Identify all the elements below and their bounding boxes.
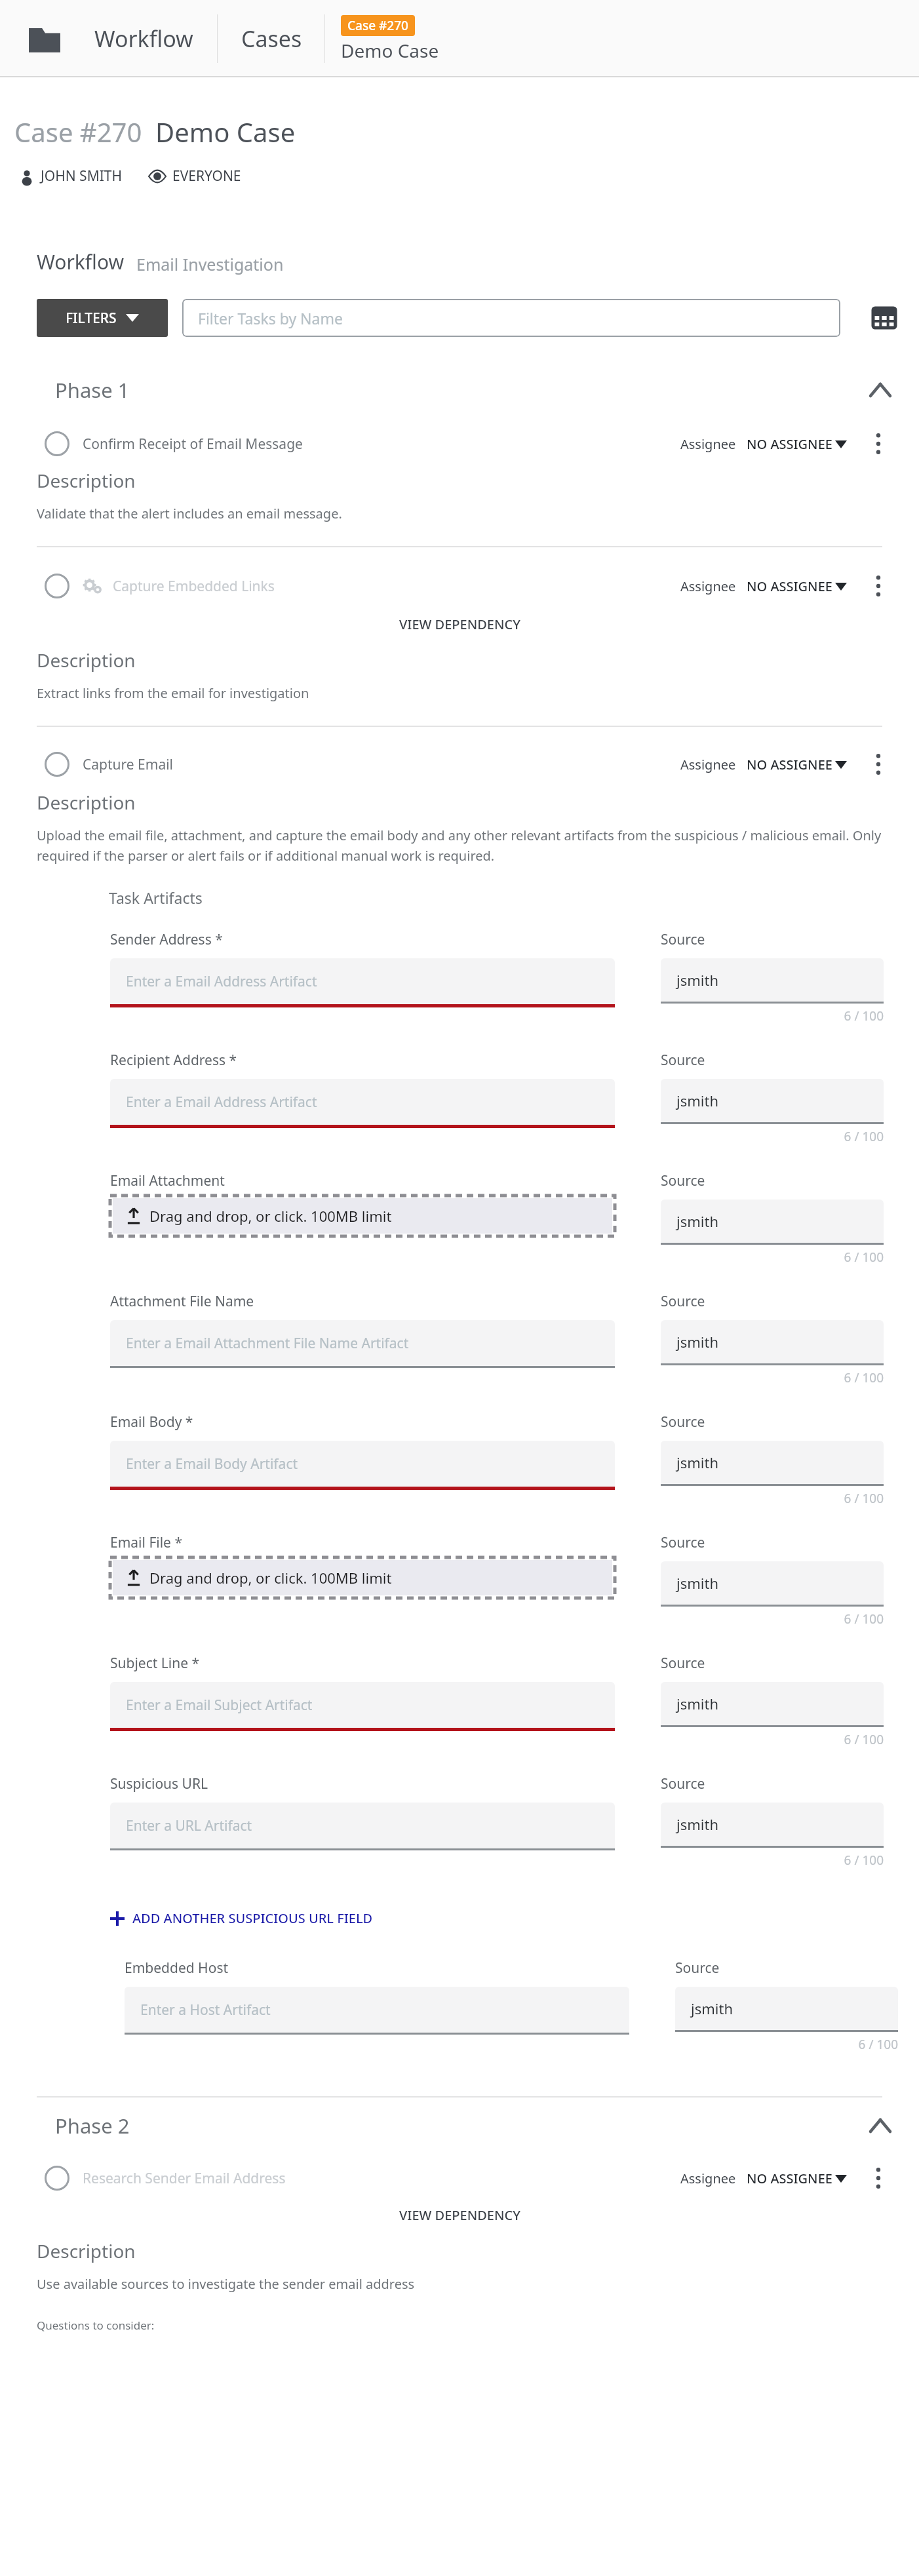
button[interactable]: Enter a Email Address Artifact (110, 958, 615, 1004)
button[interactable]: jsmith (661, 1682, 884, 1725)
staticText: Assignee (680, 756, 736, 773)
button[interactable]: Capture Embedded Links (0, 574, 919, 598)
staticText: Confirm Receipt of Email Message (83, 435, 303, 454)
staticText: 6 / 100 (661, 1249, 884, 1266)
staticText: VIEW DEPENDENCY (399, 2206, 520, 2224)
staticText: jsmith (676, 1211, 718, 1231)
staticText: Demo Case (341, 38, 439, 63)
button[interactable]: FILTERS (37, 299, 168, 337)
staticText: ADD ANOTHER SUSPICIOUS URL FIELD (132, 1909, 373, 1927)
staticText: jsmith (676, 1332, 718, 1352)
staticText: 6 / 100 (661, 1490, 884, 1507)
button[interactable]: Confirm Receipt of Email Message (0, 431, 919, 456)
button[interactable]: More options (867, 432, 890, 456)
staticText: Email Attachment (110, 1171, 225, 1190)
button[interactable]: Enter a URL Artifact (110, 1803, 615, 1848)
button[interactable]: jsmith (661, 1200, 884, 1243)
staticText: Questions to consider: (37, 2318, 155, 2333)
button[interactable]: Research Sender Email Address (0, 2166, 919, 2191)
button[interactable]: Capture Email (0, 752, 919, 777)
staticText: Cases (241, 24, 302, 54)
staticText: jsmith (676, 1091, 718, 1110)
button[interactable]: NO ASSIGNEE (747, 577, 847, 595)
staticText: Email File * (110, 1533, 182, 1552)
button[interactable]: Cases (236, 24, 307, 54)
button[interactable]: More options (867, 752, 890, 776)
button[interactable]: VIEW DEPENDENCY (394, 610, 526, 638)
button[interactable]: Enter a Email Subject Artifact (110, 1682, 615, 1728)
button[interactable]: Phase 1 (0, 376, 919, 404)
staticText: 6 / 100 (661, 1369, 884, 1386)
staticText: Description (37, 468, 136, 493)
button[interactable]: Enter a Email Attachment File Name Artif… (110, 1320, 615, 1366)
staticText: Subject Line * (110, 1654, 200, 1673)
button[interactable]: Enter a Email Address Artifact (110, 1079, 615, 1125)
button[interactable]: NO ASSIGNEE (747, 756, 847, 773)
staticText: Source (661, 1774, 705, 1793)
staticText: Embedded Host (125, 1959, 229, 1978)
staticText: Enter a Host Artifact (140, 2000, 271, 2020)
button[interactable]: NO ASSIGNEE (747, 435, 847, 453)
staticText: Use available sources to investigate the… (37, 2275, 415, 2293)
button[interactable]: NO ASSIGNEE (747, 2170, 847, 2187)
staticText: Enter a URL Artifact (126, 1816, 252, 1835)
button[interactable]: jsmith (661, 1320, 884, 1363)
staticText: Source (661, 1171, 705, 1190)
button[interactable]: Workflow (89, 24, 199, 54)
staticText: jsmith (676, 1573, 718, 1593)
staticText: Description (37, 648, 136, 673)
staticText: Email Investigation (136, 253, 284, 275)
staticText: NO ASSIGNEE (747, 577, 832, 595)
button[interactable]: jsmith (661, 958, 884, 1002)
staticText: Enter a Email Subject Artifact (126, 1696, 313, 1715)
staticText: Capture Embedded Links (113, 577, 275, 596)
button[interactable]: Phase 2 (0, 2112, 919, 2139)
staticText: Description (37, 790, 136, 815)
button[interactable]: jsmith (661, 1561, 884, 1605)
button[interactable]: Folder (29, 25, 60, 52)
button[interactable]: Enter a Host Artifact (125, 1987, 629, 2033)
staticText: Recipient Address * (110, 1051, 237, 1070)
button[interactable]: Enter a Email Body Artifact (110, 1441, 615, 1487)
staticText: Upload the email file, attachment, and c… (37, 827, 890, 864)
button[interactable]: Case #270 (341, 15, 439, 63)
staticText: 6 / 100 (661, 1731, 884, 1748)
button[interactable]: jsmith (661, 1079, 884, 1122)
staticText: Phase 1 (55, 376, 130, 404)
staticText: Assignee (680, 2170, 736, 2187)
staticText: 6 / 100 (661, 1610, 884, 1628)
staticText: Enter a Email Address Artifact (126, 972, 317, 991)
staticText: Capture Email (83, 755, 174, 774)
button[interactable]: jsmith (661, 1441, 884, 1484)
staticText: VIEW DEPENDENCY (399, 615, 520, 633)
staticText: Enter a Email Address Artifact (126, 1093, 317, 1112)
staticText: jsmith (676, 1694, 718, 1713)
staticText: NO ASSIGNEE (747, 756, 832, 773)
staticText: Source (661, 1051, 705, 1070)
button[interactable]: More options (867, 2166, 890, 2190)
staticText: Attachment File Name (110, 1292, 254, 1311)
staticText: Drag and drop, or click. 100MB limit (149, 1206, 392, 1226)
staticText: Case #270 (347, 17, 408, 34)
staticText: Source (661, 1292, 705, 1311)
button[interactable]: Filter Tasks by Name (182, 299, 840, 337)
staticText: Workflow (37, 248, 125, 275)
button[interactable]: Drag and drop, or click. 100MB limit (110, 1557, 615, 1598)
button[interactable]: ADD ANOTHER SUSPICIOUS URL FIELD (110, 1905, 373, 1931)
staticText: jsmith (691, 1999, 733, 2018)
button[interactable]: Drag and drop, or click. 100MB limit (110, 1196, 615, 1236)
staticText: Workflow (94, 24, 193, 54)
staticText: NO ASSIGNEE (747, 2170, 832, 2187)
staticText: Drag and drop, or click. 100MB limit (149, 1568, 392, 1588)
staticText: Phase 2 (55, 2112, 130, 2139)
staticText: EVERYONE (172, 166, 241, 185)
staticText: Assignee (680, 435, 736, 453)
staticText: Enter a Email Body Artifact (126, 1454, 298, 1473)
staticText: Sender Address * (110, 930, 223, 949)
button[interactable]: VIEW DEPENDENCY (394, 2201, 526, 2229)
staticText: jsmith (676, 970, 718, 990)
button[interactable]: More options (867, 574, 890, 598)
button[interactable]: jsmith (675, 1987, 898, 2030)
button[interactable]: Table view (869, 303, 899, 333)
button[interactable]: jsmith (661, 1803, 884, 1846)
